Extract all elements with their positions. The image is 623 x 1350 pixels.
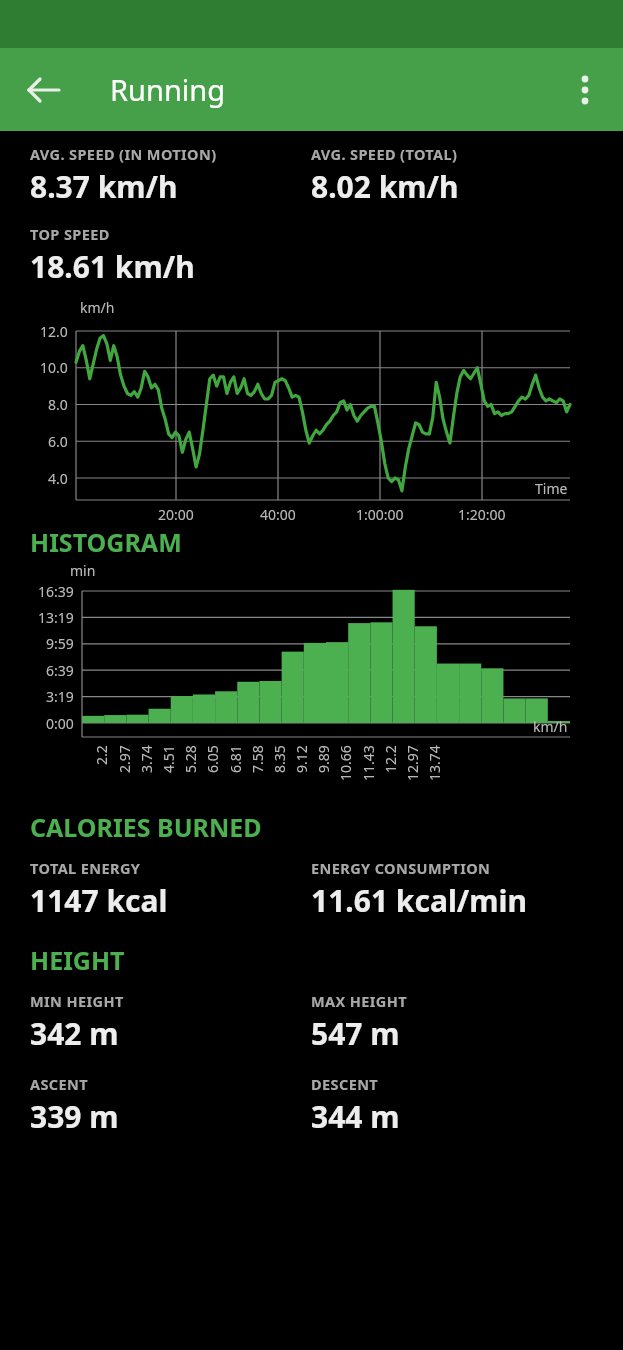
staticText: 11.61 kcal/min bbox=[311, 880, 528, 921]
staticText: DESCENT bbox=[311, 1074, 379, 1094]
staticText: 18.61 km/h bbox=[30, 246, 195, 287]
staticText: CALORIES BURNED bbox=[30, 810, 262, 844]
staticText: 547 m bbox=[311, 1013, 400, 1054]
staticText: ASCENT bbox=[30, 1074, 89, 1094]
staticText: 342 m bbox=[30, 1013, 119, 1054]
staticText: 8.02 km/h bbox=[311, 166, 459, 207]
staticText: HISTOGRAM bbox=[30, 525, 182, 559]
staticText: 339 m bbox=[30, 1096, 119, 1137]
staticText: AVG. SPEED (IN MOTION) bbox=[30, 144, 217, 164]
staticText: ENERGY CONSUMPTION bbox=[311, 858, 491, 878]
staticText: 8.37 km/h bbox=[30, 166, 178, 207]
staticText: MAX HEIGHT bbox=[311, 991, 408, 1011]
staticText: 1147 kcal bbox=[30, 880, 168, 921]
staticText: AVG. SPEED (TOTAL) bbox=[311, 144, 458, 164]
staticText: Running bbox=[110, 70, 226, 109]
staticText: 344 m bbox=[311, 1096, 400, 1137]
staticText: HEIGHT bbox=[30, 943, 125, 977]
staticText: TOP SPEED bbox=[30, 224, 110, 244]
button[interactable]: Back bbox=[14, 60, 74, 120]
staticText: TOTAL ENERGY bbox=[30, 858, 141, 878]
button[interactable]: More options bbox=[559, 64, 611, 116]
staticText: MIN HEIGHT bbox=[30, 991, 124, 1011]
